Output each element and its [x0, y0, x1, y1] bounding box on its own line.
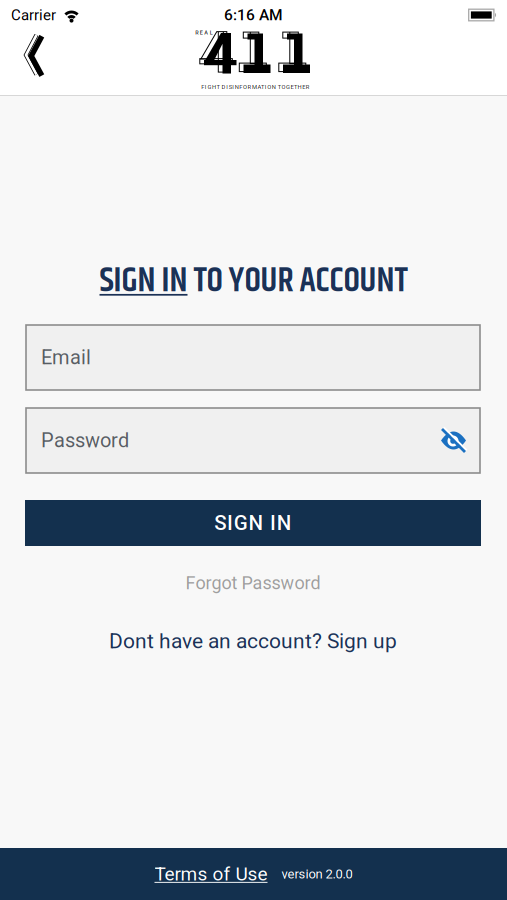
staticText: Carrier — [11, 6, 56, 24]
button[interactable]: Back — [22, 32, 48, 80]
staticText: Forgot Password — [185, 572, 320, 594]
staticText: FIGHT DISINFORMATION TOGETHER — [201, 84, 310, 90]
staticText: Dont have an account? Sign up — [109, 629, 397, 653]
staticText: 6:16 AM — [224, 6, 283, 24]
button[interactable]: Dont have an account? Sign up — [109, 629, 397, 653]
staticText: SIGN IN — [214, 511, 292, 535]
button[interactable]: Terms of Use — [154, 863, 267, 885]
staticText: Terms of Use — [154, 863, 267, 885]
button[interactable]: Password — [25, 407, 481, 474]
button[interactable]: Email — [25, 324, 481, 391]
button[interactable]: Forgot Password — [185, 572, 320, 594]
button[interactable]: SIGN IN — [25, 500, 481, 546]
button[interactable]: Show password — [439, 427, 467, 455]
staticText: SIGN IN TO YOUR ACCOUNT — [99, 255, 407, 308]
staticText: Password — [41, 429, 129, 452]
staticText: Email — [41, 346, 91, 369]
staticText: REAL — [195, 29, 213, 36]
staticText: version 2.0.0 — [281, 866, 352, 882]
